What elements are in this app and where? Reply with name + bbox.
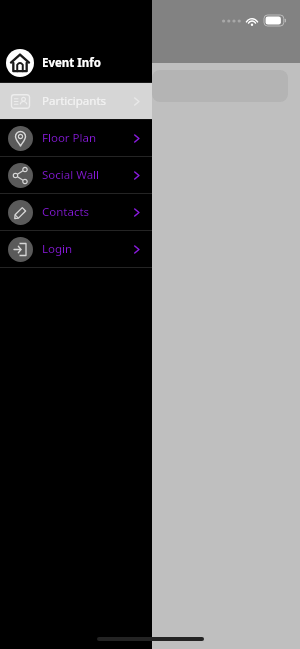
button[interactable]: Contacts [0,194,152,230]
staticText: Login [42,241,131,257]
staticText: Event Info [42,55,101,71]
button[interactable]: Login [0,231,152,267]
staticText: Participants [42,93,131,109]
button[interactable]: Event Info [0,44,152,82]
staticText: Contacts [42,204,131,220]
staticText: Floor Plan [42,130,131,146]
button[interactable]: Social Wall [0,157,152,193]
staticText: Social Wall [42,167,131,183]
button[interactable]: Participants [0,83,152,119]
button[interactable]: Floor Plan [0,120,152,156]
